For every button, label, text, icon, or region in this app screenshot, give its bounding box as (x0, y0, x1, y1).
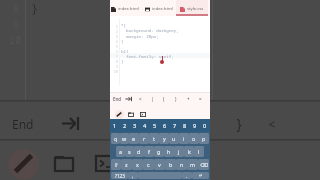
button[interactable]: g (154, 146, 164, 157)
staticText: 10 (111, 69, 118, 74)
staticText: 9 (193, 122, 197, 130)
button[interactable]: + (182, 92, 194, 106)
button[interactable]: . (182, 172, 192, 179)
staticText: a (119, 148, 123, 155)
button[interactable]: s (125, 146, 134, 157)
button[interactable]: = (194, 92, 206, 106)
button[interactable]: j (174, 146, 184, 157)
staticText: e (132, 135, 136, 142)
button[interactable]: Tab (123, 92, 134, 106)
button[interactable]: e (129, 133, 139, 144)
button[interactable]: z (121, 159, 132, 170)
button[interactable]: w (120, 133, 129, 144)
button[interactable]: , (128, 172, 138, 179)
button[interactable]: End (110, 92, 123, 106)
button[interactable]: ( (158, 92, 170, 106)
staticText: 8 (13, 2, 19, 16)
button[interactable]: Files (125, 108, 137, 120)
staticText: index.html (152, 6, 173, 12)
staticText: + (187, 96, 190, 102)
button[interactable]: q (111, 133, 120, 144)
staticText: margin: 20px; (121, 34, 159, 40)
staticText: 7 (173, 122, 177, 130)
staticText: | (151, 96, 154, 102)
staticText: 1 (111, 24, 118, 29)
button[interactable]: i (179, 133, 189, 144)
button[interactable]: y (159, 133, 169, 144)
button[interactable]: p (199, 133, 209, 144)
staticText: . (186, 173, 188, 179)
staticText: , (132, 173, 134, 179)
button[interactable]: 8 (180, 119, 190, 132)
staticText: c (147, 161, 150, 168)
staticText: 4 (111, 39, 118, 44)
button[interactable]: r (139, 133, 149, 144)
button[interactable]: | (146, 92, 158, 106)
button[interactable]: index.html (141, 0, 176, 16)
button[interactable]: f (144, 146, 154, 157)
button[interactable]: a (116, 146, 125, 157)
staticText: l (198, 148, 200, 155)
button[interactable]: l (194, 146, 204, 157)
button[interactable]: index.html (108, 0, 141, 16)
staticText: style.css (187, 6, 204, 12)
button[interactable]: 0 (200, 119, 210, 132)
button[interactable]: ↵ (192, 172, 209, 179)
staticText: s (128, 148, 131, 155)
button[interactable]: o (189, 133, 199, 144)
button[interactable]: b (165, 159, 176, 170)
staticText: < (139, 96, 142, 102)
button[interactable]: 9 (190, 119, 200, 132)
button[interactable]: k (184, 146, 194, 157)
button[interactable]: Terminal (137, 108, 149, 120)
staticText: ⌫ (200, 162, 208, 168)
button[interactable]: 4 (140, 119, 150, 132)
button[interactable]: ?123 (111, 172, 128, 179)
button[interactable]: 7 (170, 119, 180, 132)
button[interactable]: < (134, 92, 146, 106)
staticText: 7 (111, 54, 118, 59)
button[interactable]: h (164, 146, 174, 157)
button[interactable]: n (176, 159, 187, 170)
button[interactable]: 6 (160, 119, 170, 132)
staticText: 8 (183, 122, 187, 130)
button[interactable]: style.css (176, 0, 208, 16)
staticText: f (148, 148, 150, 155)
staticText: y (163, 135, 166, 142)
staticText: ?123 (115, 173, 125, 179)
staticText: font-family: serif; (121, 54, 174, 60)
staticText: 3 (111, 34, 118, 39)
staticText: End (12, 116, 34, 132)
button[interactable]: u (169, 133, 179, 144)
button[interactable]: d (134, 146, 144, 157)
staticText: 2 (123, 122, 127, 130)
staticText: v (158, 161, 161, 168)
staticText: w (122, 135, 127, 142)
staticText: } (121, 39, 124, 45)
staticText: 5 (111, 44, 118, 49)
staticText: background: darkgrey; (121, 28, 179, 34)
button[interactable]: t (149, 133, 159, 144)
staticText: x (136, 161, 139, 168)
staticText: } (121, 59, 124, 65)
staticText: ) (175, 96, 177, 102)
button[interactable]: c (143, 159, 154, 170)
staticText: 9 (111, 64, 118, 69)
button[interactable]: ⌫ (198, 159, 209, 170)
button[interactable]: m (187, 159, 198, 170)
staticText: m (190, 161, 196, 168)
button[interactable]: ⇧ (111, 159, 121, 170)
staticText: ↵ (199, 173, 203, 178)
button[interactable]: Edit (113, 108, 125, 120)
staticText: h1{ (121, 49, 129, 55)
button[interactable]: v (154, 159, 165, 170)
button[interactable]: 3 (130, 119, 140, 132)
button[interactable]: 1 (110, 119, 120, 132)
button[interactable]: 2 (120, 119, 130, 132)
staticText: 8 (111, 59, 118, 64)
button[interactable]: 5 (150, 119, 160, 132)
button[interactable]: x (132, 159, 143, 170)
button[interactable]: ) (170, 92, 182, 106)
